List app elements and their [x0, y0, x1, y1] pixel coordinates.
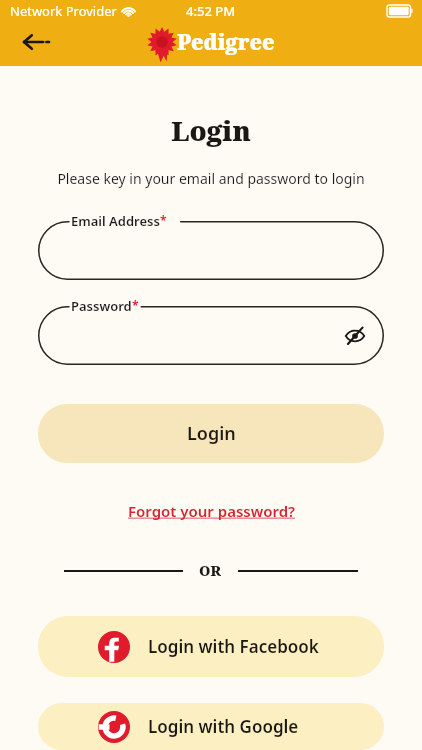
- staticText: Login: [187, 421, 236, 446]
- button[interactable]: Forgot your password?: [38, 501, 384, 521]
- staticText: Login: [38, 112, 384, 149]
- staticText: *: [132, 297, 139, 313]
- staticText: Please key in your email and password to…: [38, 169, 384, 188]
- staticText: 4:52 PM: [186, 2, 236, 20]
- button[interactable]: Login: [38, 404, 384, 463]
- button[interactable]: Login with Google: [38, 703, 384, 750]
- button[interactable]: Show password: [342, 323, 368, 349]
- staticText: Password: [71, 297, 132, 315]
- staticText: *: [160, 212, 167, 228]
- button[interactable]: Back: [18, 24, 54, 60]
- staticText: Login with Facebook: [148, 635, 319, 658]
- staticText: Login with Google: [148, 715, 299, 738]
- staticText: Forgot your password?: [128, 501, 295, 521]
- staticText: OR: [199, 561, 222, 580]
- staticText: Email Address: [71, 212, 160, 230]
- staticText: Network Provider: [10, 2, 117, 20]
- staticText: Pedigree: [177, 28, 275, 57]
- button[interactable]: Login with Facebook: [38, 616, 384, 677]
